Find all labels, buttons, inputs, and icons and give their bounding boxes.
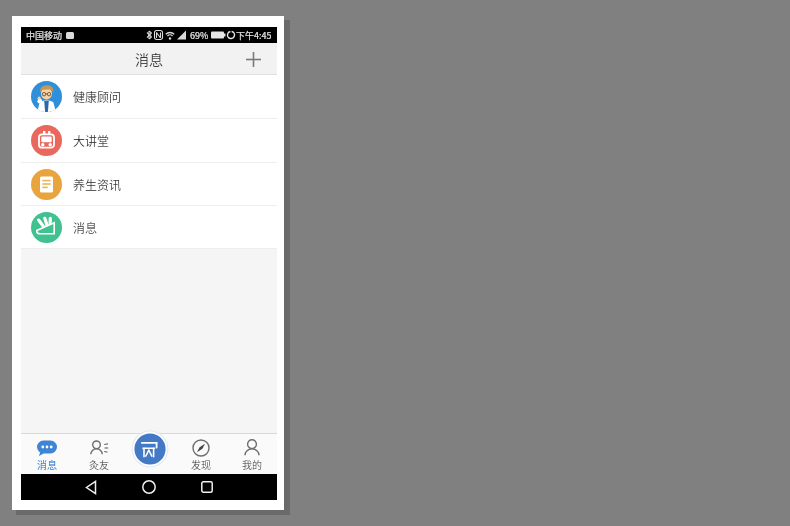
staticText: 消息 — [37, 457, 57, 471]
button[interactable]: 消息 — [21, 206, 277, 249]
staticText: 我的 — [242, 457, 262, 471]
button[interactable]: 大讲堂 — [21, 119, 277, 163]
staticText: 消息 — [135, 49, 163, 69]
button[interactable]: 养生资讯 — [21, 163, 277, 206]
button[interactable] — [71, 474, 111, 500]
staticText: 69% — [190, 29, 209, 42]
button[interactable] — [187, 474, 227, 500]
button[interactable] — [240, 46, 266, 72]
button[interactable]: 灸友 — [73, 433, 124, 474]
button[interactable]: 健康顾问 — [21, 75, 277, 119]
staticText: 下午4:45 — [236, 29, 272, 42]
staticText: 养生资讯 — [73, 176, 122, 193]
staticText: 消息 — [73, 219, 98, 236]
staticText: 灸友 — [89, 457, 109, 471]
button[interactable] — [129, 474, 169, 500]
staticText: 大讲堂 — [73, 132, 110, 149]
staticText: 中国移动 — [26, 29, 63, 42]
button[interactable]: 我的 — [226, 433, 277, 474]
staticText: 健康顾问 — [73, 88, 122, 105]
button[interactable] — [124, 433, 175, 474]
button[interactable]: 消息 — [21, 433, 73, 474]
staticText: 发现 — [191, 457, 211, 471]
button[interactable]: 发现 — [175, 433, 226, 474]
